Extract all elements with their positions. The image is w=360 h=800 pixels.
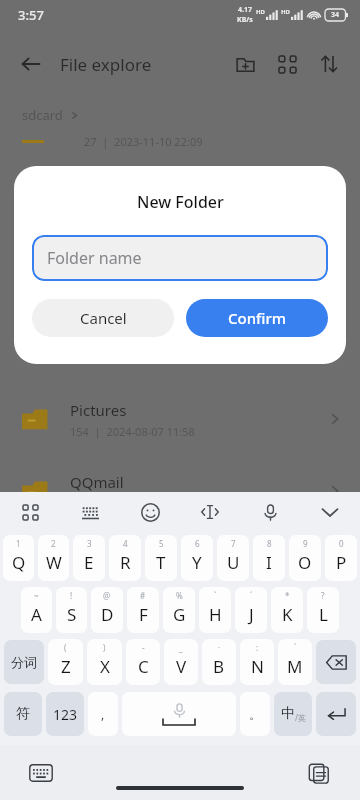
button[interactable]: * [271, 587, 303, 633]
button[interactable]: ´ [235, 587, 267, 633]
button[interactable]: % [163, 587, 195, 633]
button[interactable]: Confirm [186, 299, 328, 337]
staticText: 4.17 [238, 5, 252, 15]
staticText: W [46, 551, 62, 574]
staticText: P [336, 551, 347, 574]
button[interactable]: Grid view [270, 47, 304, 81]
staticText: X [100, 655, 110, 678]
staticText: : [256, 642, 259, 653]
button[interactable]: 7 [217, 535, 249, 581]
button[interactable]: _ [164, 639, 198, 685]
staticText: ` [214, 590, 217, 601]
staticText: 154 | 2024-08-07 11:58 [70, 424, 195, 439]
button[interactable]: Space [122, 692, 236, 736]
button[interactable]: ` [199, 587, 231, 633]
staticText: File explore [60, 53, 152, 76]
staticText: HD [256, 8, 265, 16]
staticText: 8 [267, 538, 272, 549]
staticText: J [249, 603, 254, 626]
button[interactable]: # [127, 587, 159, 633]
staticText: @ [103, 590, 111, 601]
staticText: V [176, 655, 187, 678]
staticText: 0 [339, 538, 344, 549]
button[interactable]: 4 [109, 535, 141, 581]
button[interactable]: Emoji [120, 492, 180, 532]
button[interactable]: 0 [325, 535, 357, 581]
staticText: ( [64, 642, 67, 653]
staticText: HD [281, 8, 290, 16]
button[interactable]: 6 [181, 535, 213, 581]
staticText: 27 | 2023-11-10 22:09 [84, 134, 203, 149]
button[interactable]: ` [278, 639, 312, 685]
button[interactable]: - [126, 639, 160, 685]
button[interactable]: , [88, 692, 118, 736]
staticText: O [298, 551, 312, 574]
staticText: T [156, 551, 166, 574]
button[interactable]: Cancel [32, 299, 174, 337]
staticText: , [101, 706, 105, 722]
staticText: 1 [16, 538, 21, 549]
button[interactable]: · [202, 639, 236, 685]
button[interactable]: Folder name [32, 235, 328, 281]
button[interactable]: 1 [3, 535, 34, 581]
button[interactable]: ? [307, 587, 339, 633]
button[interactable]: 9 [289, 535, 321, 581]
staticText: 7 [231, 538, 236, 549]
staticText: /英 [295, 712, 306, 723]
staticText: G [173, 603, 186, 626]
button[interactable]: Pictures [0, 386, 360, 452]
button[interactable]: ! [56, 587, 87, 633]
staticText: A [31, 603, 42, 626]
button[interactable]: Edit text [180, 492, 240, 532]
staticText: % [176, 590, 183, 601]
staticText: 2 [51, 538, 56, 549]
button[interactable]: 5 [145, 535, 177, 581]
button[interactable]: 分词 [4, 640, 44, 684]
staticText: Z [61, 655, 71, 678]
button[interactable]: Backspace [316, 640, 356, 684]
staticText: S [67, 603, 77, 626]
button[interactable]: QQmail [0, 458, 360, 524]
staticText: ´ [250, 590, 253, 601]
button[interactable]: Keyboard [24, 756, 58, 790]
staticText: Pictures [70, 400, 127, 420]
staticText: H [209, 603, 222, 626]
staticText: 4 [123, 538, 128, 549]
staticText: sdcard [22, 106, 63, 124]
staticText: _ [179, 642, 183, 653]
button[interactable]: Apps [0, 492, 60, 532]
staticText: ~ [34, 590, 39, 601]
button[interactable]: Sort [312, 47, 346, 81]
button[interactable]: Keyboard layout [60, 492, 120, 532]
button[interactable]: 123 [46, 692, 84, 736]
staticText: 中 [281, 705, 295, 723]
button[interactable]: ) [87, 639, 122, 685]
button[interactable]: @ [91, 587, 123, 633]
staticText: 。 [249, 707, 261, 722]
button[interactable]: New folder [228, 47, 262, 81]
staticText: · [218, 642, 221, 653]
button[interactable]: 3 [73, 535, 105, 581]
staticText: M [287, 655, 303, 678]
button[interactable]: : [240, 639, 274, 685]
button[interactable]: 中 [274, 692, 312, 736]
staticText: 6 | 2023-11-10 22:09 [70, 496, 183, 511]
button[interactable]: Hide keyboard [300, 492, 360, 532]
button[interactable]: Voice input [240, 492, 300, 532]
button[interactable]: 2 [38, 535, 69, 581]
button[interactable]: Clipboard [302, 756, 336, 790]
staticText: L [319, 603, 328, 626]
staticText: Y [192, 551, 202, 574]
button[interactable]: 。 [240, 692, 270, 736]
staticText: # [140, 590, 146, 601]
button[interactable]: Enter [316, 692, 356, 736]
button[interactable]: ~ [21, 587, 52, 633]
button[interactable]: 8 [253, 535, 285, 581]
button[interactable]: Back [14, 47, 48, 81]
button[interactable]: 符 [4, 692, 42, 736]
button[interactable]: ( [48, 639, 83, 685]
button[interactable]: sdcard [22, 106, 63, 124]
staticText: Cancel [80, 308, 127, 328]
staticText: R [120, 551, 131, 574]
staticText: C [138, 655, 149, 678]
